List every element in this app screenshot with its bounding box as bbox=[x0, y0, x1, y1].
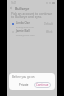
staticText: Linda Ose bbox=[16, 21, 30, 25]
staticText: Continue bbox=[36, 83, 49, 87]
staticText: 9:41 bbox=[11, 1, 17, 5]
staticText: Pick an account to continue to Bullseye … bbox=[11, 12, 53, 19]
staticText: Private bbox=[19, 83, 29, 87]
staticText: Jamie Ball bbox=[16, 29, 30, 33]
button[interactable]: Private bbox=[17, 82, 31, 88]
button[interactable]: Linda Ose bbox=[7, 20, 57, 28]
staticText: jamie@mail.com bbox=[16, 33, 35, 36]
button[interactable]: Continue bbox=[34, 82, 51, 88]
staticText: Work bbox=[46, 30, 53, 34]
staticText: Bullseye bbox=[15, 6, 30, 11]
button[interactable]: Jamie Ball bbox=[7, 28, 57, 36]
staticText: Before you go on bbox=[12, 75, 35, 79]
button[interactable]: Back bbox=[7, 5, 15, 11]
staticText: linda@mail.com bbox=[16, 25, 34, 28]
staticText: Default bbox=[44, 22, 53, 26]
